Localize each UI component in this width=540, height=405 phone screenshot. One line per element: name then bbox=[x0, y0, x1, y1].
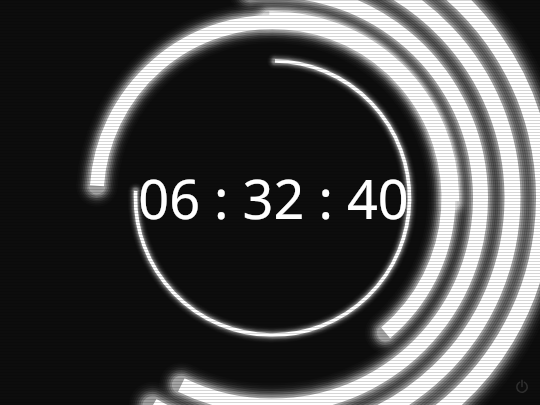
other: Elapsed time 06 32 40 bbox=[0, 0, 540, 405]
staticText: 06 : 32 : 40 bbox=[138, 161, 409, 235]
button[interactable]: Elapsed time 06 32 40 bbox=[0, 0, 540, 405]
